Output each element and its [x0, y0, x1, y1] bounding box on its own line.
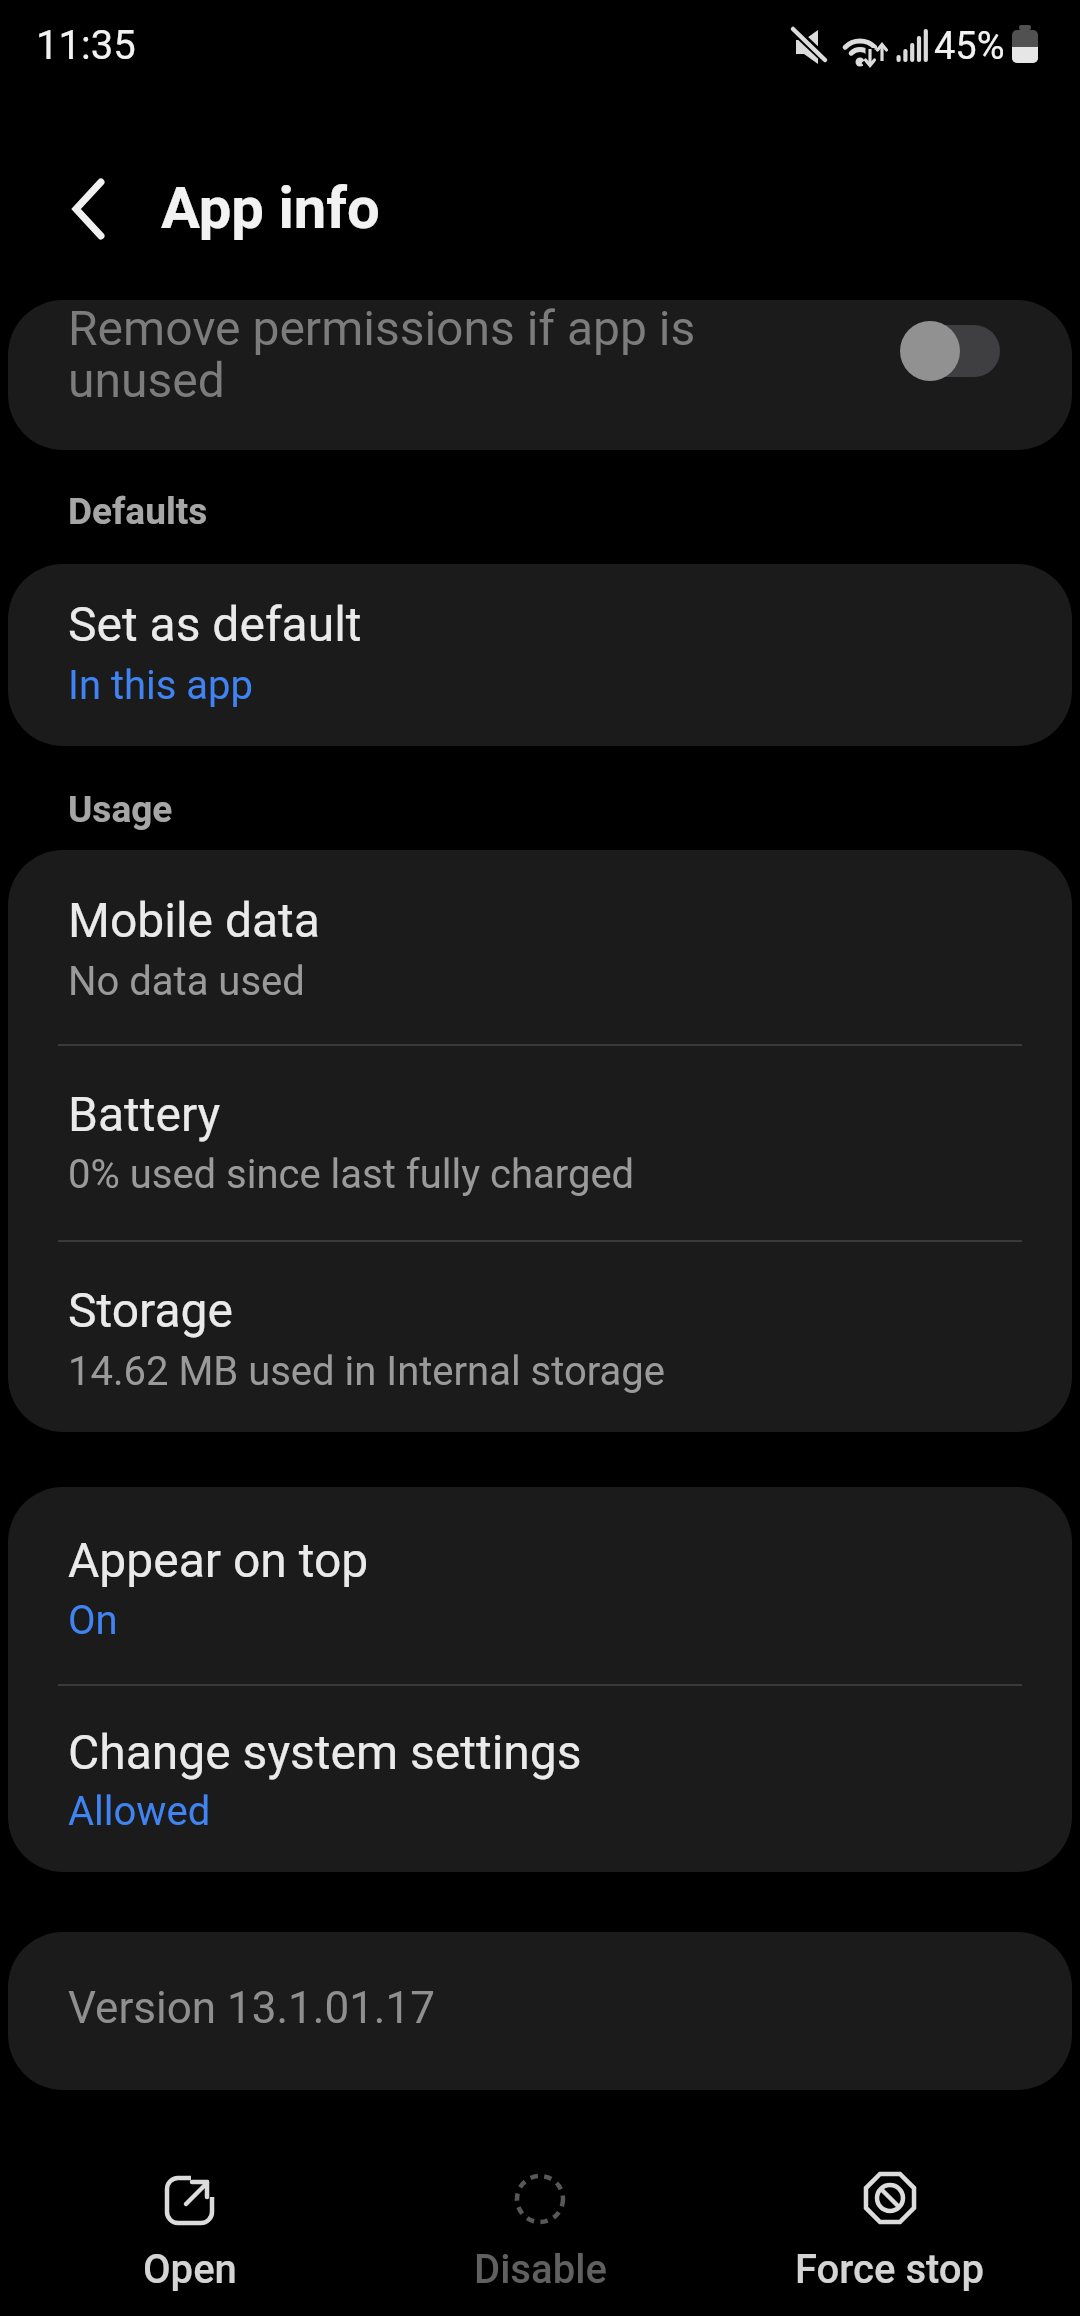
staticText: Allowed	[68, 1788, 211, 1835]
button[interactable]: Remove permissions if app is	[8, 300, 1072, 450]
staticText: 14.62 MB used in Internal storage	[68, 1348, 665, 1395]
staticText: No data used	[68, 958, 305, 1005]
staticText: Remove permissions if app is	[68, 300, 696, 356]
button[interactable]: Set as default	[8, 564, 1072, 746]
button[interactable]: Disable	[440, 2158, 640, 2308]
staticText: App info	[161, 174, 380, 242]
button[interactable]: Battery	[8, 1046, 1072, 1240]
staticText: Version 13.1.01.17	[68, 1982, 435, 2034]
staticText: Appear on top	[68, 1532, 369, 1588]
staticText: 0% used since last fully charged	[68, 1151, 635, 1198]
button[interactable]	[48, 170, 128, 250]
staticText: In this app	[68, 662, 253, 709]
staticText: Mobile data	[68, 892, 320, 948]
staticText: unused	[68, 352, 225, 408]
staticText: Change system settings	[68, 1724, 582, 1780]
button[interactable]: Storage	[8, 1242, 1072, 1432]
staticText: Open	[143, 2246, 237, 2293]
staticText: Usage	[68, 788, 173, 831]
button[interactable]: Change system settings	[8, 1686, 1072, 1872]
staticText: Force stop	[795, 2246, 985, 2293]
staticText: Battery	[68, 1086, 221, 1142]
staticText: On	[68, 1597, 118, 1644]
staticText: 11:35	[36, 22, 136, 69]
button[interactable]: Appear on top	[8, 1487, 1072, 1684]
staticText: Storage	[68, 1282, 233, 1338]
button[interactable]: Open	[90, 2158, 290, 2308]
staticText: Defaults	[68, 490, 208, 533]
button[interactable]: Mobile data	[8, 850, 1072, 1045]
button[interactable]: Force stop	[790, 2158, 990, 2308]
staticText: Set as default	[68, 596, 362, 652]
staticText: 45%	[934, 24, 1005, 69]
staticText: Disable	[474, 2246, 607, 2293]
